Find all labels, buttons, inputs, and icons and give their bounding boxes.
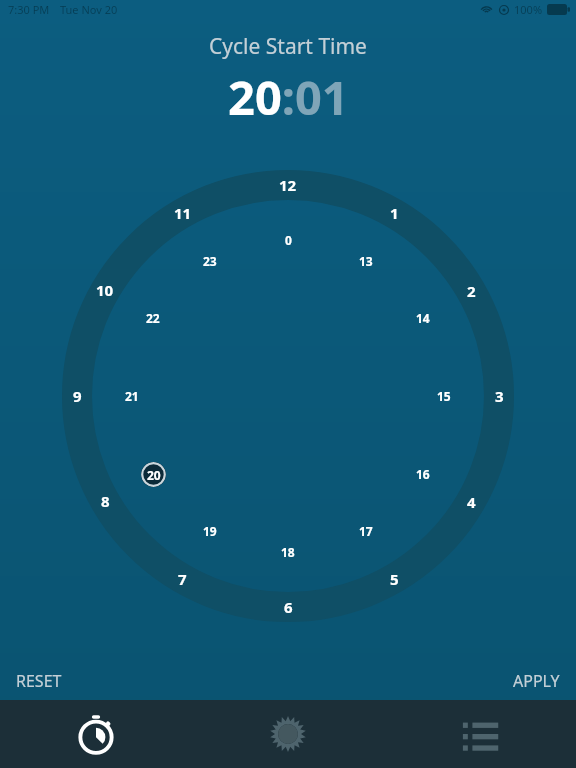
staticText: APPLY xyxy=(513,670,560,692)
staticText: 12 xyxy=(279,175,297,195)
staticText: 1 xyxy=(390,203,399,223)
staticText: 23 xyxy=(203,253,217,269)
staticText: 11 xyxy=(174,203,192,223)
staticText: 20 xyxy=(147,467,161,483)
staticText: 8 xyxy=(101,491,110,511)
staticText: RESET xyxy=(16,670,62,692)
staticText: 9 xyxy=(73,386,82,406)
staticText: 7 xyxy=(178,569,187,589)
staticText: 21 xyxy=(125,388,139,404)
staticText: 22 xyxy=(146,310,160,326)
button[interactable]: Brightness xyxy=(192,700,384,768)
button[interactable]: RESET xyxy=(0,662,78,700)
staticText: 17 xyxy=(359,523,373,539)
button[interactable]: Timer xyxy=(0,700,192,768)
staticText: 13 xyxy=(359,253,373,269)
staticText: 18 xyxy=(281,544,295,560)
button[interactable]: 20 xyxy=(141,462,166,487)
button[interactable]: APPLY xyxy=(497,662,576,700)
staticText: 16 xyxy=(416,466,430,482)
staticText: 10 xyxy=(96,280,114,300)
staticText: 14 xyxy=(416,310,430,326)
staticText: 20:01 xyxy=(228,65,349,129)
staticText: 4 xyxy=(467,492,476,512)
staticText: 15 xyxy=(437,388,451,404)
staticText: 5 xyxy=(390,569,399,589)
staticText: 100% xyxy=(514,2,543,17)
staticText: 6 xyxy=(284,597,293,617)
staticText: 7:30 PM xyxy=(8,2,50,17)
button[interactable]: List xyxy=(384,700,576,768)
staticText: 3 xyxy=(495,386,504,406)
staticText: 19 xyxy=(203,523,217,539)
staticText: Tue Nov 20 xyxy=(60,2,118,17)
staticText: 2 xyxy=(467,281,476,301)
staticText: Cycle Start Time xyxy=(209,32,367,61)
staticText: 0 xyxy=(285,232,292,248)
